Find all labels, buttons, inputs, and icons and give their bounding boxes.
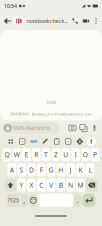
staticText: H (58, 165, 63, 174)
staticText: U (63, 150, 68, 159)
button[interactable]: S (17, 163, 26, 176)
staticText: Z (54, 150, 58, 159)
staticText: T (44, 150, 48, 159)
button[interactable]: P (91, 148, 99, 161)
staticText: E (24, 150, 28, 159)
staticText: I (74, 150, 76, 159)
button[interactable]: E (22, 148, 31, 161)
staticText: N (68, 181, 73, 190)
button[interactable]: J (66, 163, 75, 176)
button[interactable]: Clipboard (51, 136, 62, 147)
button[interactable] (38, 194, 73, 207)
staticText: 10:54 (4, 2, 17, 10)
button[interactable]: H (56, 163, 65, 176)
button[interactable]: Q (2, 148, 11, 161)
button[interactable]: SMS-Nachricht (2, 122, 60, 134)
button[interactable]: F (37, 163, 45, 176)
button[interactable]: R (32, 148, 41, 161)
button[interactable]: Translate (62, 136, 74, 147)
staticText: SMS-Nachricht (13, 124, 50, 132)
staticText: P (93, 150, 97, 159)
button[interactable]: Handwriting (39, 136, 51, 147)
staticText: W (14, 150, 20, 159)
staticText: notebookcheck... (26, 17, 67, 25)
button[interactable]: Y (17, 178, 26, 192)
staticText: G (48, 165, 53, 174)
button[interactable]: Settings (74, 136, 85, 147)
staticText: GIF (30, 139, 37, 144)
staticText: D (29, 165, 34, 174)
staticText: . (77, 196, 79, 205)
button[interactable]: O (81, 148, 90, 161)
button[interactable]: B (56, 178, 65, 192)
button[interactable]: N (66, 178, 75, 192)
button[interactable]: X (27, 178, 36, 192)
button[interactable]: , (21, 194, 28, 207)
button[interactable]: Send (82, 194, 95, 207)
staticText: 10:54 (46, 100, 55, 105)
button[interactable]: Z (51, 148, 60, 161)
staticText: SMS/MMS · Austausch mit notebookcheck.co… (10, 111, 92, 116)
staticText: O (83, 150, 88, 159)
button[interactable]: D (27, 163, 36, 176)
button[interactable]: More options (91, 13, 100, 29)
button[interactable]: M (76, 178, 85, 192)
button[interactable]: G (47, 163, 55, 176)
staticText: X (29, 181, 33, 190)
staticText: M (77, 181, 83, 190)
button[interactable]: Gallery (78, 122, 89, 134)
button[interactable]: Shift (5, 178, 16, 192)
staticText: , (23, 196, 25, 205)
button[interactable]: U (61, 148, 70, 161)
button[interactable]: Voice message (89, 122, 100, 134)
button[interactable]: V (47, 178, 55, 192)
staticText: ?123 (8, 197, 19, 204)
staticText: C (39, 181, 43, 190)
button[interactable]: T (42, 148, 50, 161)
button[interactable]: notebookcheck... (13, 16, 67, 26)
staticText: K (78, 165, 82, 174)
staticText: V (49, 181, 53, 190)
staticText: J (70, 165, 72, 174)
button[interactable]: L (86, 163, 94, 176)
staticText: Y (20, 181, 24, 190)
button[interactable]: W (12, 148, 21, 161)
button[interactable]: K (76, 163, 85, 176)
button[interactable]: Back (1, 13, 13, 29)
button[interactable]: Voice input (85, 136, 97, 147)
button[interactable]: I (71, 148, 80, 161)
button[interactable]: Backspace (86, 178, 97, 192)
button[interactable]: Emoji (29, 194, 37, 207)
button[interactable]: C (37, 178, 46, 192)
button[interactable]: GIF (28, 136, 39, 147)
button[interactable]: Call (69, 13, 80, 29)
staticText: R (34, 150, 38, 159)
button[interactable]: Apps (5, 136, 16, 147)
staticText: A (10, 165, 14, 174)
staticText: Q (4, 150, 9, 159)
button[interactable]: Video call (80, 13, 91, 29)
button[interactable]: Stickers (16, 136, 28, 147)
button[interactable]: Camera (67, 122, 78, 134)
button[interactable]: . (74, 194, 81, 207)
staticText: L (89, 165, 92, 174)
staticText: B (59, 181, 63, 190)
button[interactable]: ?123 (7, 194, 20, 207)
button[interactable]: A (7, 163, 16, 176)
staticText: S (20, 165, 24, 174)
staticText: F (40, 165, 43, 174)
